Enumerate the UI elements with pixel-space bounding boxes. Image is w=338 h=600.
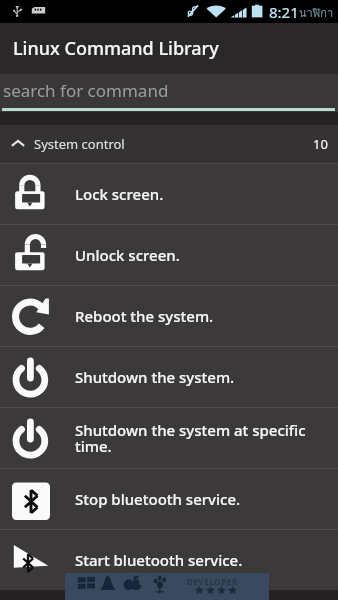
button[interactable]: Shutdown the system at specific time.	[0, 408, 338, 468]
staticText: นาฬิกา	[299, 4, 334, 21]
staticText: search for command	[3, 79, 169, 102]
other: Collapse section	[11, 137, 25, 151]
button[interactable]: search for command	[0, 74, 338, 112]
staticText: Reboot the system.	[75, 306, 214, 326]
button[interactable]: Shutdown the system.	[0, 347, 338, 407]
staticText: DEVELOPER	[187, 576, 238, 587]
staticText: Shutdown the system at specific time.	[75, 420, 316, 456]
button[interactable]: Stop bluetooth service.	[0, 469, 338, 529]
staticText: Shutdown the system.	[75, 367, 235, 387]
staticText: Unlock screen.	[75, 245, 180, 265]
button[interactable]: Lock screen.	[0, 164, 338, 224]
staticText: 10	[313, 135, 328, 153]
button[interactable]: Collapse section	[0, 125, 338, 163]
staticText: Lock screen.	[75, 184, 164, 204]
staticText: System control	[34, 135, 125, 153]
staticText: Stop bluetooth service.	[75, 489, 241, 509]
button[interactable]: Unlock screen.	[0, 225, 338, 285]
staticText: Start bluetooth service.	[75, 550, 243, 570]
button[interactable]: Start bluetooth service.	[0, 530, 338, 590]
staticText: Linux Command Library	[13, 36, 219, 61]
staticText: 8:21	[269, 2, 299, 22]
button[interactable]: Reboot the system.	[0, 286, 338, 346]
